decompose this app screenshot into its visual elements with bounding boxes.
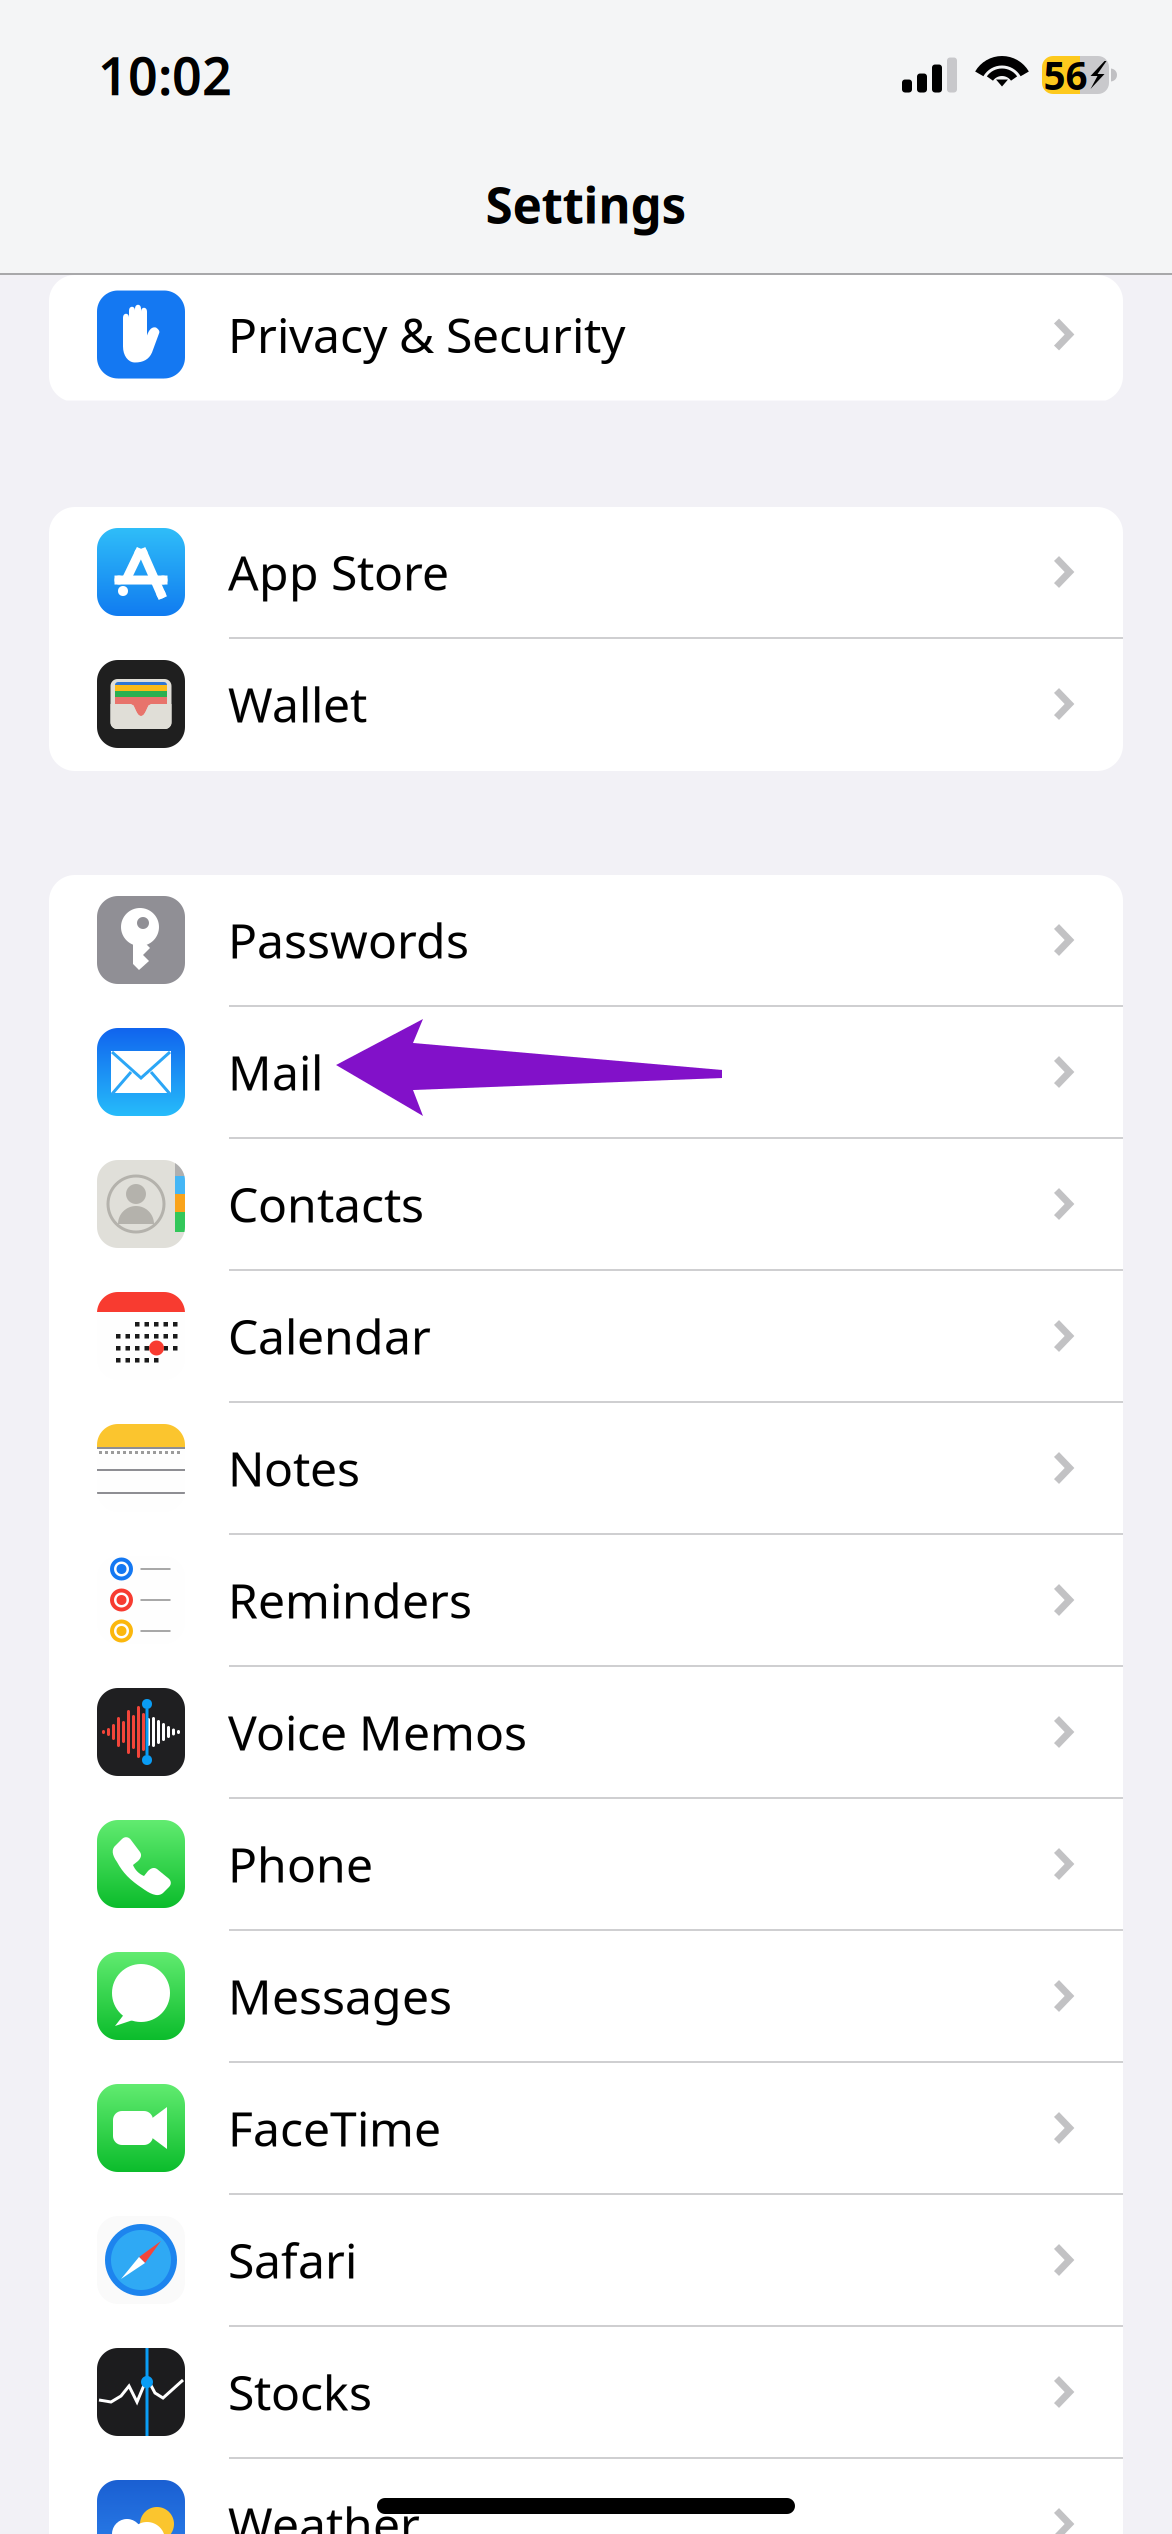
staticText: Privacy & Security — [228, 303, 625, 366]
button[interactable]: Phone — [49, 1799, 1123, 1929]
staticText: Notes — [228, 1436, 360, 1500]
staticText: Weather — [228, 2492, 420, 2534]
staticText: Phone — [228, 1832, 373, 1896]
staticText: 56 — [1043, 49, 1087, 101]
button[interactable]: FaceTime — [49, 2063, 1123, 2193]
button[interactable]: Passwords — [49, 875, 1123, 1005]
staticText: Messages — [228, 1964, 452, 2028]
button[interactable]: App Store — [49, 507, 1123, 637]
button[interactable]: Weather — [49, 2459, 1123, 2534]
staticText: 10:02 — [98, 40, 232, 110]
staticText: Voice Memos — [228, 1700, 527, 1764]
staticText: Stocks — [228, 2360, 372, 2424]
button[interactable]: Reminders — [49, 1535, 1123, 1665]
button[interactable]: Safari — [49, 2195, 1123, 2325]
staticText: Safari — [228, 2228, 357, 2292]
staticText: FaceTime — [228, 2096, 441, 2160]
button[interactable]: Contacts — [49, 1139, 1123, 1269]
staticText: Reminders — [228, 1568, 472, 1632]
staticText: Mail — [228, 1040, 323, 1104]
button[interactable]: Voice Memos — [49, 1667, 1123, 1797]
staticText: Calendar — [228, 1304, 431, 1368]
button[interactable]: Notes — [49, 1403, 1123, 1533]
staticText: App Store — [228, 540, 449, 604]
staticText: Contacts — [228, 1172, 424, 1236]
button[interactable]: Mail — [49, 1007, 1123, 1137]
staticText: Settings — [485, 171, 686, 237]
staticText: Passwords — [228, 908, 469, 972]
button[interactable]: Stocks — [49, 2327, 1123, 2457]
button[interactable]: Messages — [49, 1931, 1123, 2061]
button[interactable]: Wallet — [49, 639, 1123, 769]
button[interactable]: Calendar — [49, 1271, 1123, 1401]
button[interactable]: Privacy & Security — [49, 269, 1123, 399]
staticText: Wallet — [228, 672, 367, 736]
